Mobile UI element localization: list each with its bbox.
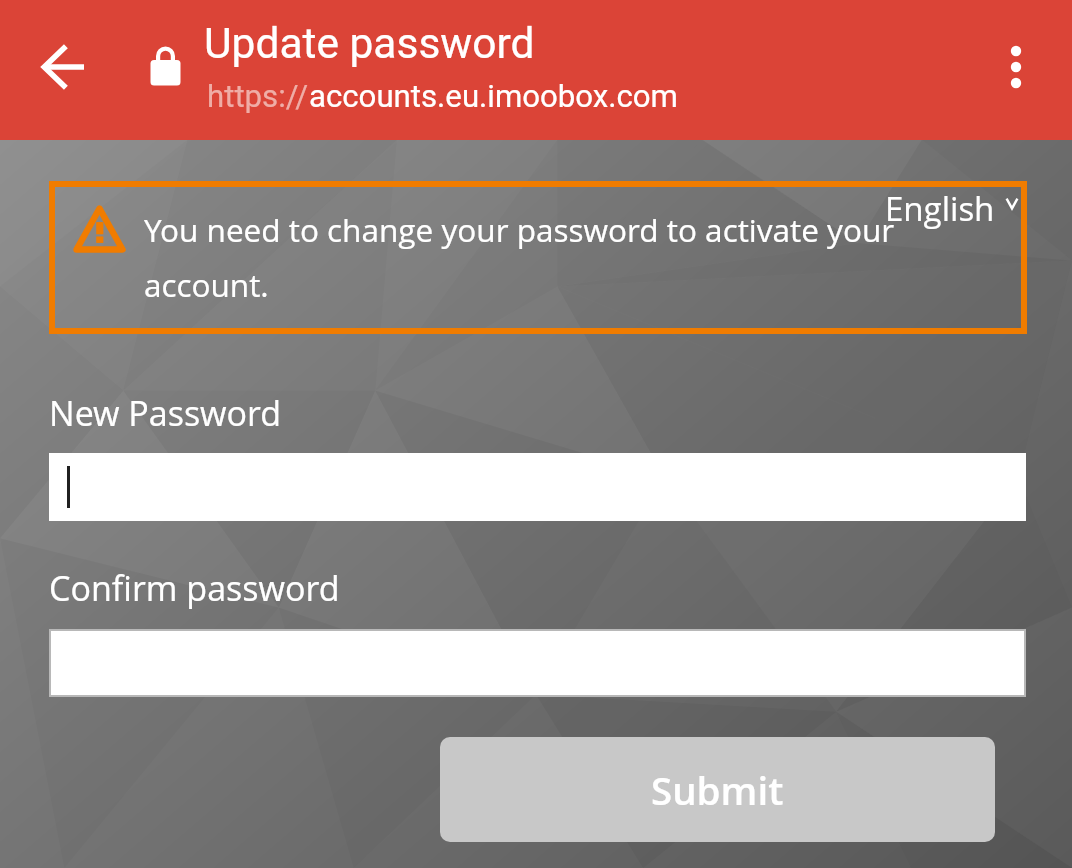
staticText: Submit	[651, 764, 784, 816]
button[interactable]: English	[885, 186, 1018, 231]
staticText: Confirm password	[49, 565, 340, 611]
button[interactable]: Submit	[440, 737, 995, 842]
staticText: New Password	[49, 390, 282, 436]
staticText: https://	[207, 78, 309, 115]
button[interactable]: More options	[972, 23, 1060, 111]
button[interactable]: Back	[20, 23, 108, 111]
staticText: accounts.eu.imoobox.com	[309, 78, 678, 115]
staticText: Update password	[204, 19, 535, 69]
staticText: English	[885, 186, 995, 231]
button[interactable]: New password input field	[49, 453, 1026, 521]
button[interactable]: Confirm password input field	[49, 629, 1026, 697]
staticText: You need to change your password to acti…	[144, 208, 914, 306]
